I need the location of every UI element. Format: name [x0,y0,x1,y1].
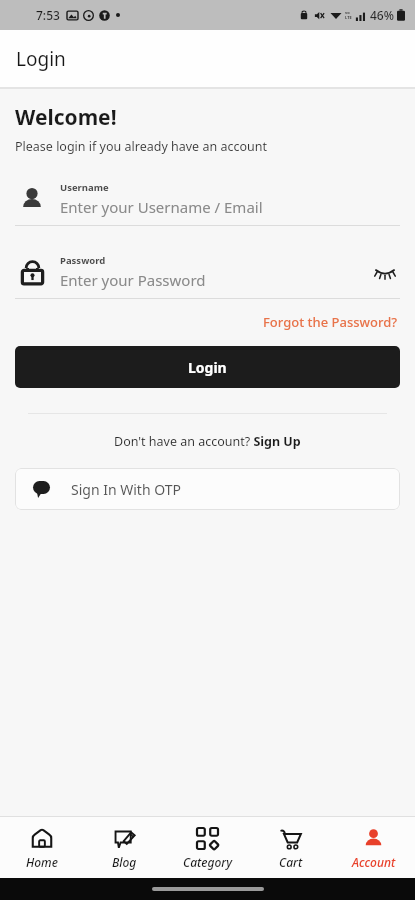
button[interactable]: Username [0,181,415,217]
button[interactable]: Home [0,817,83,878]
staticText: Account [352,854,396,870]
button[interactable]: Category [166,817,249,878]
staticText: Login [16,46,66,72]
button[interactable]: Blog [83,817,166,878]
button[interactable]: Sign In With OTP [15,468,400,510]
staticText: Enter your Password [60,270,206,290]
button[interactable]: Password [0,254,415,290]
button[interactable]: Don't have an account? Sign Up [110,431,305,452]
button[interactable]: Forgot the Password? [261,310,400,334]
staticText: Please login if you already have an acco… [15,138,267,155]
staticText: Login [188,358,227,377]
button[interactable]: Cart [249,817,332,878]
button[interactable]: Show password [370,257,400,287]
staticText: Cart [279,854,303,870]
staticText: Username [60,181,109,194]
staticText: Blog [112,854,137,870]
staticText: Password [60,254,106,267]
staticText: 46% [370,7,394,23]
staticText: Sign In With OTP [71,480,181,499]
staticText: Welcome! [15,103,117,132]
staticText: Forgot the Password? [263,313,398,331]
staticText: 7:53 [36,7,60,23]
button[interactable]: Account [332,817,415,878]
staticText: Don't have an account? Sign Up [114,433,301,450]
staticText: Enter your Username / Email [60,197,263,217]
staticText: Home [26,854,58,870]
staticText: Category [183,854,232,870]
staticText: vo LTE [345,10,352,20]
button[interactable]: Login [15,346,400,388]
